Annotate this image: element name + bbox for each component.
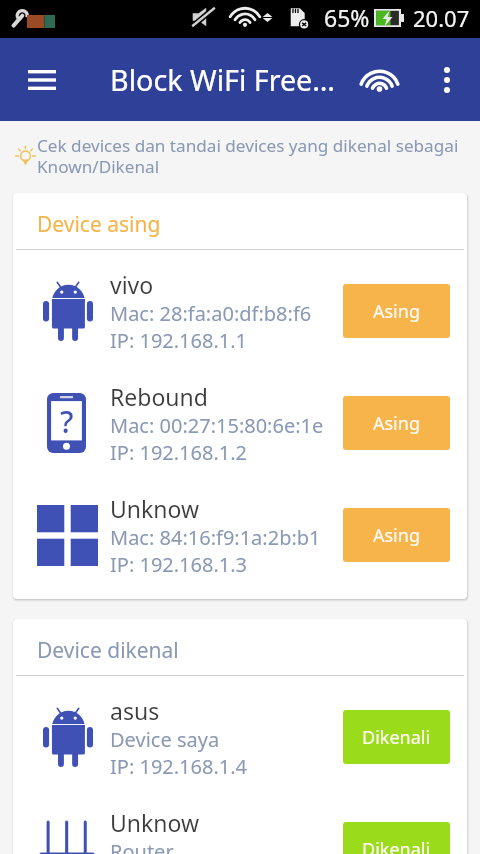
staticText: Router bbox=[110, 838, 174, 854]
button[interactable]: Unknow bbox=[13, 793, 467, 854]
button[interactable]: Dikenali bbox=[343, 710, 450, 764]
staticText: asus bbox=[110, 695, 160, 726]
staticText: Block WiFi Free… bbox=[110, 60, 335, 99]
staticText: Rebound bbox=[110, 381, 208, 412]
button[interactable]: Asing bbox=[343, 396, 450, 450]
button[interactable]: Dikenali bbox=[343, 822, 450, 854]
staticText: Device asing bbox=[37, 210, 161, 239]
staticText: Unknow bbox=[110, 807, 200, 838]
button[interactable]: Unknow bbox=[13, 479, 467, 591]
staticText: 65% bbox=[324, 2, 370, 33]
staticText: ? bbox=[60, 401, 74, 442]
staticText: Device dikenal bbox=[37, 636, 179, 665]
button[interactable]: Asing bbox=[343, 508, 450, 562]
staticText: 20.07 bbox=[413, 3, 470, 33]
staticText: Dikenali bbox=[362, 725, 431, 750]
button[interactable]: Asing bbox=[343, 284, 450, 338]
staticText: Asing bbox=[373, 523, 420, 548]
staticText: Device saya bbox=[110, 726, 220, 753]
button[interactable]: WiFi bbox=[355, 56, 403, 104]
button[interactable]: asus bbox=[13, 681, 467, 793]
button[interactable]: Menu bbox=[18, 56, 66, 104]
staticText: Asing bbox=[373, 411, 420, 436]
button[interactable]: vivo bbox=[13, 255, 467, 367]
staticText: Mac: 84:16:f9:1a:2b:b1 bbox=[110, 524, 321, 551]
staticText: vivo bbox=[110, 269, 154, 300]
staticText: Dikenali bbox=[362, 837, 431, 854]
staticText: Unknow bbox=[110, 493, 200, 524]
staticText: IP: 192.168.1.3 bbox=[110, 551, 248, 578]
staticText: Asing bbox=[373, 299, 420, 324]
staticText: Mac: 28:fa:a0:df:b8:f6 bbox=[110, 300, 312, 327]
staticText: IP: 192.168.1.1 bbox=[110, 327, 248, 354]
staticText: Cek devices dan tandai devices yang dike… bbox=[37, 134, 480, 178]
staticText: Mac: 00:27:15:80:6e:1e bbox=[110, 412, 324, 439]
staticText: IP: 192.168.1.4 bbox=[110, 753, 248, 780]
staticText: IP: 192.168.1.2 bbox=[110, 439, 248, 466]
button[interactable]: More options bbox=[423, 56, 471, 104]
button[interactable]: ? bbox=[13, 367, 467, 479]
